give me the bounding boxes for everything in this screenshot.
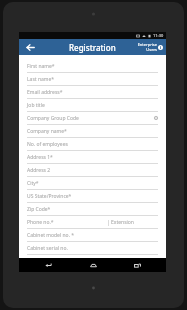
- staticText: Address 2: [27, 167, 51, 174]
- staticText: Company name*: [27, 128, 67, 135]
- button[interactable]: Cabinet model no. *: [27, 229, 158, 242]
- button[interactable]: Recent apps: [122, 258, 152, 272]
- staticText: Company Group Code: [27, 115, 79, 122]
- staticText: 11:30: [153, 33, 164, 38]
- button[interactable]: Home: [78, 258, 108, 272]
- staticText: Job title: [27, 102, 45, 109]
- button[interactable]: Address 2: [27, 164, 158, 177]
- staticText: Zip Code*: [27, 206, 51, 213]
- button[interactable]: Phone no.*: [27, 216, 158, 229]
- button[interactable]: Zip Code*: [27, 203, 158, 216]
- button[interactable]: Cabinet serial no.: [27, 242, 158, 255]
- button[interactable]: First name*: [27, 60, 158, 73]
- staticText: First name*: [27, 63, 55, 70]
- staticText: Enterprise Users: [137, 42, 157, 52]
- staticText: City*: [27, 180, 39, 187]
- other: Help: [154, 116, 158, 120]
- staticText: Email address*: [27, 89, 63, 96]
- button[interactable]: Job title: [27, 99, 158, 112]
- button[interactable]: No. of employees: [27, 138, 158, 151]
- button[interactable]: Enterprise Users: [134, 39, 166, 55]
- staticText: Cabinet model no. *: [27, 232, 75, 239]
- staticText: Phone no.*: [27, 219, 108, 226]
- staticText: Registration: [69, 42, 116, 53]
- button[interactable]: Address 1*: [27, 151, 158, 164]
- button[interactable]: Back: [19, 39, 41, 55]
- staticText: US State/Province*: [27, 193, 72, 200]
- button[interactable]: Company name*: [27, 125, 158, 138]
- staticText: Cabinet serial no.: [27, 245, 68, 252]
- button[interactable]: Back: [33, 258, 63, 272]
- staticText: Last name*: [27, 76, 55, 83]
- button[interactable]: City*: [27, 177, 158, 190]
- button[interactable]: Last name*: [27, 73, 158, 86]
- button[interactable]: Email address*: [27, 86, 158, 99]
- button[interactable]: Company Group Code: [27, 112, 158, 125]
- button[interactable]: US State/Province*: [27, 190, 158, 203]
- staticText: Extension: [111, 219, 134, 226]
- staticText: No. of employees: [27, 141, 68, 148]
- staticText: Address 1*: [27, 154, 53, 161]
